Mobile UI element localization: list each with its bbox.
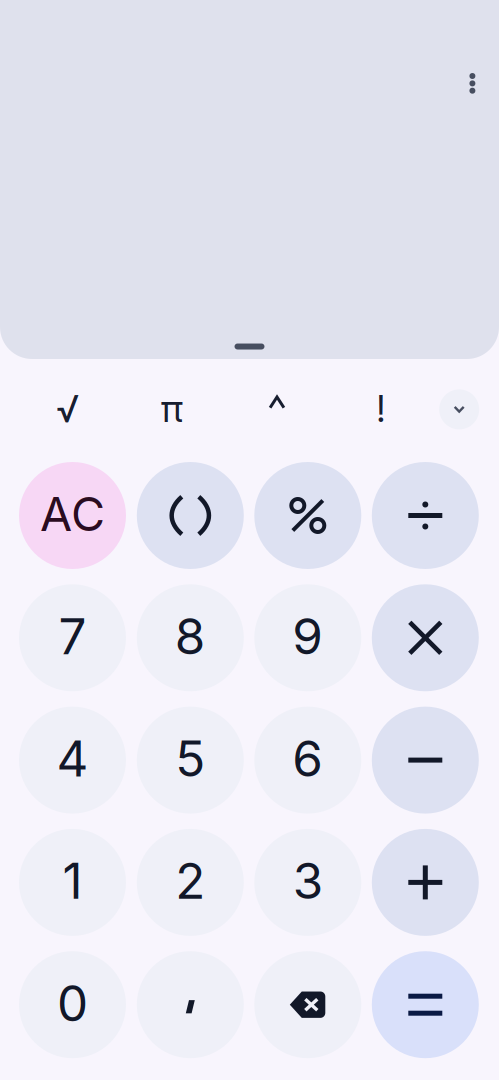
- button[interactable]: !: [351, 382, 411, 434]
- button[interactable]: Plus: [372, 829, 479, 936]
- button[interactable]: 7: [19, 584, 126, 691]
- button[interactable]: π: [142, 382, 202, 434]
- button[interactable]: √: [38, 382, 98, 434]
- button[interactable]: 3: [254, 829, 361, 936]
- staticText: 2: [175, 851, 205, 911]
- button[interactable]: 6: [254, 707, 361, 814]
- staticText: 5: [175, 729, 205, 788]
- button[interactable]: Equals: [372, 951, 479, 1058]
- button[interactable]: Parentheses: [137, 462, 244, 569]
- staticText: AC: [40, 486, 105, 542]
- button[interactable]: 1: [19, 829, 126, 936]
- button[interactable]: Percent: [254, 462, 361, 569]
- staticText: 1: [62, 851, 82, 911]
- button[interactable]: More options: [450, 59, 494, 107]
- button[interactable]: 4: [19, 707, 126, 814]
- button[interactable]: 2: [137, 829, 244, 936]
- button[interactable]: Multiply: [372, 584, 479, 691]
- staticText: 9: [292, 606, 323, 666]
- staticText: 4: [56, 729, 88, 788]
- button[interactable]: 9: [254, 584, 361, 691]
- button[interactable]: 5: [137, 707, 244, 814]
- button[interactable]: 8: [137, 584, 244, 691]
- button[interactable]: Collapse keypad: [435, 385, 483, 433]
- staticText: 7: [58, 606, 86, 666]
- button[interactable]: Divide: [372, 462, 479, 569]
- staticText: 6: [292, 729, 323, 788]
- staticText: 3: [293, 851, 323, 911]
- staticText: !: [376, 386, 385, 431]
- button[interactable]: AC: [19, 462, 126, 569]
- button[interactable]: 0: [19, 951, 126, 1058]
- button[interactable]: Minus: [372, 707, 479, 814]
- staticText: √: [56, 386, 79, 431]
- button[interactable]: Exponent: [247, 395, 307, 447]
- staticText: π: [160, 386, 183, 431]
- staticText: 8: [175, 606, 206, 666]
- staticText: 0: [57, 973, 88, 1033]
- button[interactable]: Decimal separator: [137, 951, 244, 1058]
- button[interactable]: Delete: [254, 951, 361, 1058]
